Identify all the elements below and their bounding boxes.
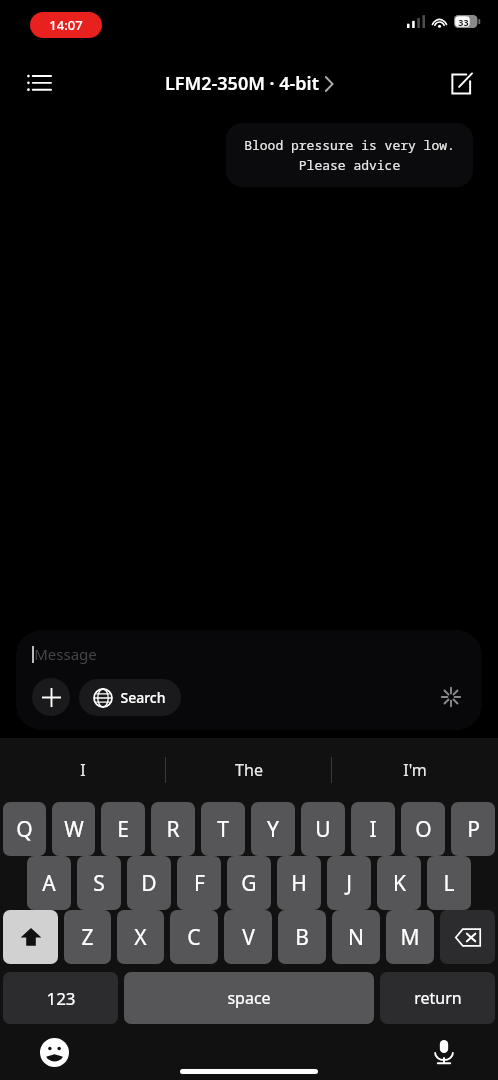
staticText: N (348, 923, 364, 952)
button[interactable]: Backspace (440, 910, 495, 964)
button[interactable]: I'm (332, 738, 498, 802)
button[interactable]: Conversations (16, 61, 62, 107)
staticText: 123 (46, 987, 76, 1010)
staticText: K (393, 869, 406, 898)
button[interactable]: N (332, 910, 380, 964)
staticText: Z (81, 923, 94, 952)
button[interactable]: C (170, 910, 218, 964)
button[interactable]: F (177, 856, 221, 910)
button[interactable]: 123 (3, 972, 118, 1024)
button[interactable]: O (401, 802, 445, 856)
button[interactable]: Add attachment (32, 678, 70, 716)
staticText: C (187, 923, 201, 952)
staticText: Y (267, 815, 279, 844)
button[interactable]: J (327, 856, 371, 910)
staticText: return (414, 987, 462, 1009)
staticText: D (141, 869, 157, 898)
staticText: E (117, 815, 129, 844)
staticText: V (242, 923, 255, 952)
button[interactable]: Emoji (34, 1032, 74, 1072)
button[interactable]: The (166, 738, 332, 802)
button[interactable]: Q (3, 802, 46, 856)
button[interactable]: Z (64, 910, 111, 964)
staticText: M (400, 923, 420, 952)
button[interactable]: K (377, 856, 421, 910)
staticText: L (443, 869, 455, 898)
staticText: S (93, 869, 105, 898)
button[interactable]: Dictation (424, 1032, 464, 1072)
button[interactable]: H (277, 856, 321, 910)
staticText: P (467, 815, 480, 844)
staticText: The (235, 759, 263, 781)
button[interactable]: New chat (438, 61, 484, 107)
staticText: W (64, 815, 84, 844)
button[interactable]: S (77, 856, 121, 910)
button[interactable]: I (0, 738, 166, 802)
staticText: B (295, 923, 309, 952)
button[interactable]: U (301, 802, 345, 856)
staticText: T (217, 815, 229, 844)
staticText: X (134, 923, 147, 952)
staticText: Message (34, 644, 97, 664)
button[interactable]: R (151, 802, 195, 856)
staticText: Q (16, 815, 33, 844)
button[interactable]: Y (251, 802, 295, 856)
staticText: U (315, 815, 331, 844)
staticText: I'm (403, 759, 427, 781)
button[interactable]: A (27, 856, 71, 910)
staticText: 33 (458, 16, 469, 28)
staticText: O (415, 815, 432, 844)
button[interactable]: T (201, 802, 245, 856)
staticText: Search (120, 688, 166, 707)
button[interactable]: E (101, 802, 145, 856)
staticText: Blood pressure is very low. Please advic… (244, 136, 455, 174)
button[interactable]: P (451, 802, 495, 856)
staticText: F (194, 869, 205, 898)
button[interactable]: W (52, 802, 95, 856)
button[interactable]: Search (79, 679, 181, 716)
button[interactable]: V (224, 910, 272, 964)
staticText: 14:07 (49, 16, 83, 34)
staticText: LFM2-350M · 4-bit (165, 71, 319, 96)
staticText: G (241, 869, 257, 898)
button[interactable]: return (380, 972, 495, 1024)
staticText: I (80, 759, 86, 781)
staticText: I (369, 815, 377, 844)
button[interactable]: I (351, 802, 395, 856)
staticText: H (291, 869, 307, 898)
button[interactable]: Shift (3, 910, 58, 964)
button[interactable]: X (117, 910, 164, 964)
button[interactable]: G (227, 856, 271, 910)
button[interactable]: LFM2-350M · 4-bit (165, 71, 333, 96)
button[interactable]: space (124, 972, 374, 1024)
staticText: A (42, 869, 56, 898)
staticText: J (346, 869, 352, 898)
button[interactable]: D (127, 856, 171, 910)
button[interactable]: B (278, 910, 326, 964)
staticText: space (227, 987, 271, 1009)
button[interactable]: Loading (434, 680, 468, 714)
button[interactable]: L (427, 856, 471, 910)
button[interactable]: M (386, 910, 434, 964)
staticText: R (166, 815, 180, 844)
